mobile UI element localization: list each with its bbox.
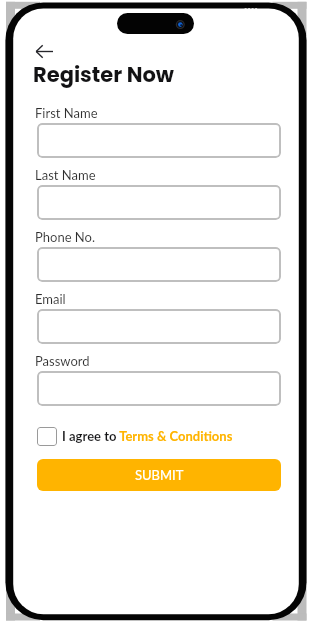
button[interactable]: SUBMIT <box>37 459 281 491</box>
staticText: First Name <box>35 105 98 121</box>
button[interactable] <box>37 247 281 282</box>
staticText: Phone No. <box>35 229 96 245</box>
button[interactable]: I agree to Terms & Conditions <box>37 424 233 448</box>
button[interactable] <box>37 371 281 406</box>
button[interactable]: Back <box>34 40 58 64</box>
staticText: Password <box>35 353 90 369</box>
staticText: Register Now <box>33 60 175 89</box>
button[interactable] <box>37 123 281 158</box>
button[interactable] <box>37 309 281 344</box>
button[interactable] <box>37 185 281 220</box>
staticText: Email <box>35 291 66 307</box>
staticText: SUBMIT <box>135 467 184 483</box>
staticText: I agree to Terms & Conditions <box>62 428 233 444</box>
staticText: Last Name <box>35 167 96 183</box>
